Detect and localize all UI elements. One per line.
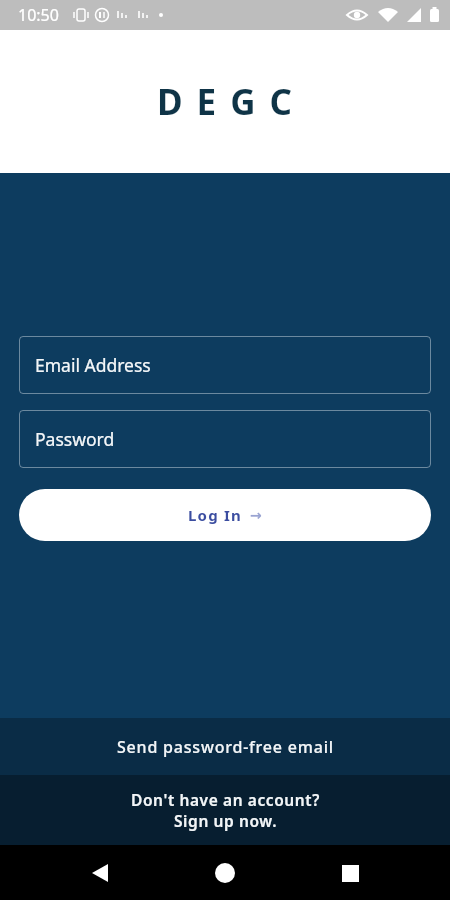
staticText: Password <box>35 427 115 451</box>
button[interactable] <box>326 849 374 897</box>
staticText: Log In <box>188 505 242 525</box>
button[interactable]: Don't have an account? Sign up now. <box>0 775 450 845</box>
staticText: Send password-free email <box>117 736 334 758</box>
staticText: Don't have an account? Sign up now. <box>131 789 320 832</box>
button[interactable]: Log In <box>19 489 431 541</box>
button[interactable] <box>201 849 249 897</box>
staticText: → <box>250 507 262 523</box>
staticText: Email Address <box>35 353 151 377</box>
button[interactable]: Send password-free email <box>0 718 450 775</box>
staticText: DEGC <box>157 78 307 126</box>
button[interactable]: Email Address <box>19 336 431 394</box>
button[interactable] <box>76 849 124 897</box>
button[interactable]: Password <box>19 410 431 468</box>
staticText: 10:50 <box>18 4 59 26</box>
